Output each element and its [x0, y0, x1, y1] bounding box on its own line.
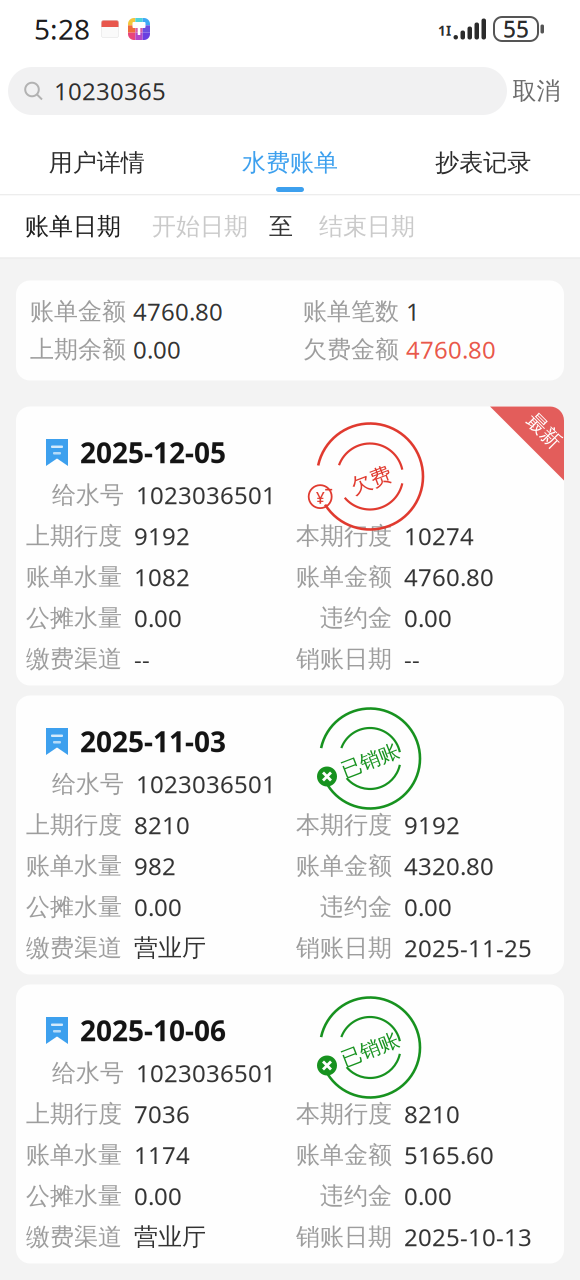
staticText: 给水号: [52, 769, 124, 799]
staticText: 账单水量: [26, 1140, 122, 1170]
staticText: 账单日期: [25, 212, 121, 241]
staticText: 账单水量: [26, 562, 122, 592]
staticText: 缴费渠道: [26, 933, 122, 963]
staticText: 2025-11-25: [404, 932, 532, 964]
staticText: 开始日期: [152, 212, 248, 241]
staticText: 上期余额: [30, 335, 126, 364]
staticText: 本期行度: [296, 1099, 392, 1129]
staticText: 违约金: [320, 1181, 392, 1211]
button[interactable]: 开始日期: [152, 212, 248, 241]
staticText: --: [134, 643, 150, 675]
button[interactable]: 取消: [507, 67, 566, 115]
staticText: 账单金额: [296, 851, 392, 881]
staticText: ¥: [316, 487, 325, 508]
staticText: 1023036501: [136, 768, 276, 800]
staticText: 982: [134, 850, 176, 882]
staticText: 1174: [134, 1139, 190, 1171]
staticText: 本期行度: [296, 810, 392, 840]
staticText: 销账日期: [296, 1222, 392, 1252]
staticText: 公摊水量: [26, 892, 122, 922]
staticText: 0.00: [404, 602, 452, 634]
staticText: 9192: [134, 520, 190, 552]
staticText: 8210: [404, 1098, 460, 1130]
staticText: 用户详情: [49, 148, 145, 177]
staticText: 9192: [404, 809, 460, 841]
staticText: 1023036501: [136, 479, 276, 511]
staticText: 最新: [524, 418, 564, 443]
staticText: 销账日期: [296, 644, 392, 674]
button[interactable]: 结束日期: [319, 212, 415, 241]
staticText: 水费账单: [242, 148, 338, 177]
button[interactable]: 2025-11-03: [16, 695, 564, 974]
staticText: 4760.80: [404, 561, 494, 593]
staticText: 账单笔数: [303, 297, 399, 326]
staticText: 4760.80: [406, 334, 496, 365]
staticText: 销账日期: [296, 933, 392, 963]
staticText: 8210: [134, 809, 190, 841]
staticText: 1023036501: [136, 1057, 276, 1089]
staticText: 已销账: [340, 748, 400, 773]
staticText: 违约金: [320, 892, 392, 922]
staticText: 1I: [438, 22, 451, 39]
staticText: 至: [269, 212, 293, 241]
staticText: 抄表记录: [435, 148, 531, 177]
staticText: 欠费: [350, 467, 392, 494]
staticText: --: [404, 643, 420, 675]
staticText: 0.00: [134, 891, 182, 923]
button[interactable]: 用户详情: [0, 124, 193, 194]
staticText: 2025-12-05: [80, 434, 226, 471]
staticText: 7036: [134, 1098, 190, 1130]
staticText: 账单水量: [26, 851, 122, 881]
staticText: 0.00: [133, 334, 181, 365]
staticText: 给水号: [52, 480, 124, 510]
staticText: 上期行度: [26, 521, 122, 551]
staticText: 结束日期: [319, 212, 415, 241]
staticText: 0.00: [134, 602, 182, 634]
staticText: 账单金额: [296, 1140, 392, 1170]
staticText: 2025-10-06: [80, 1012, 226, 1049]
staticText: 账单金额: [30, 297, 126, 326]
staticText: 0.00: [404, 1180, 452, 1212]
staticText: 1082: [134, 561, 190, 593]
staticText: 缴费渠道: [26, 1222, 122, 1252]
staticText: 已销账: [340, 1037, 400, 1062]
staticText: 55: [503, 14, 529, 44]
staticText: 4760.80: [133, 296, 223, 327]
staticText: 2025-10-13: [404, 1221, 532, 1253]
staticText: 1: [406, 296, 420, 327]
staticText: 给水号: [52, 1058, 124, 1088]
staticText: 本期行度: [296, 521, 392, 551]
staticText: 营业厅: [134, 1222, 206, 1252]
staticText: 公摊水量: [26, 1181, 122, 1211]
staticText: 缴费渠道: [26, 644, 122, 674]
staticText: 上期行度: [26, 1099, 122, 1129]
staticText: 欠费金额: [303, 335, 399, 364]
staticText: 5165.60: [404, 1139, 494, 1171]
staticText: 违约金: [320, 603, 392, 633]
staticText: 10274: [404, 520, 474, 552]
button[interactable]: 2025-12-05: [16, 406, 564, 685]
staticText: 2025-11-03: [80, 723, 226, 760]
staticText: 0.00: [404, 891, 452, 923]
staticText: 0.00: [134, 1180, 182, 1212]
staticText: 营业厅: [134, 933, 206, 963]
staticText: 账单金额: [296, 562, 392, 592]
button[interactable]: 水费账单: [193, 124, 387, 194]
button[interactable]: 2025-10-06: [16, 984, 564, 1263]
staticText: 上期行度: [26, 810, 122, 840]
staticText: 4320.80: [404, 850, 494, 882]
staticText: 公摊水量: [26, 603, 122, 633]
staticText: 5:28: [34, 10, 90, 48]
staticText: 10230365: [54, 75, 166, 107]
staticText: 取消: [512, 76, 560, 106]
button[interactable]: 抄表记录: [387, 124, 580, 194]
